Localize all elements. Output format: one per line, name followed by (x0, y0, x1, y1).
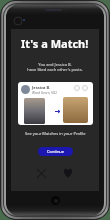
button[interactable]: Continue (38, 147, 73, 156)
staticText: See your Matches in your Profile (25, 131, 86, 136)
staticText: You and Jessica B. have liked each other… (27, 62, 83, 72)
staticText: Jessica B. (32, 85, 51, 90)
staticText: Wood Green, N22 (32, 91, 57, 95)
staticText: Continue (47, 149, 65, 154)
button[interactable]: Dismiss (34, 166, 48, 180)
button[interactable]: Jessica B. (18, 82, 93, 125)
button[interactable]: Like (61, 166, 75, 180)
staticText: It's a Match! (21, 36, 89, 51)
